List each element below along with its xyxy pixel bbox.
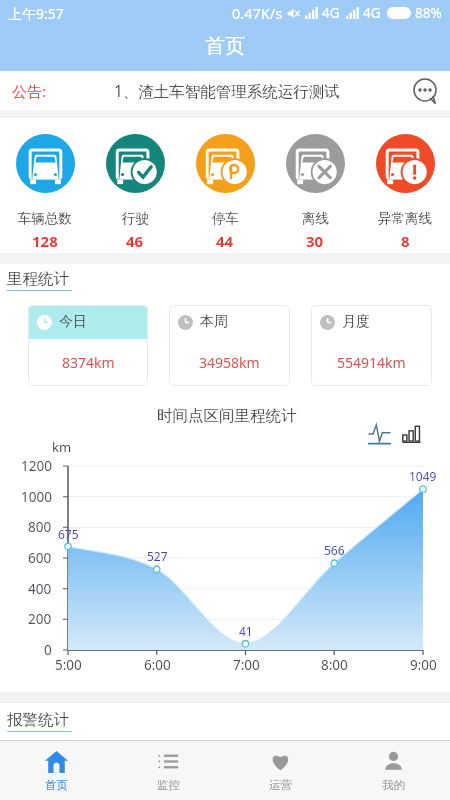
staticText: 6:00	[144, 656, 171, 674]
button[interactable]: 行驶	[90, 118, 180, 253]
button[interactable]: 车辆总数	[0, 118, 90, 253]
button[interactable]: 首页	[0, 741, 112, 800]
staticText: 88%	[415, 4, 442, 22]
staticText: 今日	[59, 313, 87, 331]
staticText: 离线	[302, 210, 329, 227]
staticText: 400	[28, 580, 52, 598]
staticText: 上午9:57	[8, 4, 64, 23]
staticText: 报警统计	[7, 710, 69, 730]
staticText: 公告:	[12, 81, 47, 101]
staticText: 1049	[409, 468, 437, 484]
staticText: 4G	[363, 4, 381, 22]
staticText: 44	[216, 231, 234, 251]
staticText: 监控	[157, 778, 180, 792]
staticText: 行驶	[122, 210, 149, 227]
staticText: 月度	[342, 313, 370, 331]
staticText: 本周	[200, 313, 228, 331]
staticText: 8	[401, 231, 410, 251]
staticText: 46	[126, 231, 144, 251]
staticText: 停车	[212, 210, 239, 227]
staticText: 5:00	[55, 656, 82, 674]
staticText: 首页	[45, 778, 68, 792]
button[interactable]: 月度	[311, 305, 432, 386]
staticText: 我的	[382, 778, 405, 792]
button[interactable]: 本周	[169, 305, 290, 386]
button[interactable]: 我的	[337, 741, 450, 800]
button[interactable]: Messages	[411, 77, 439, 105]
staticText: 8:00	[321, 656, 348, 674]
staticText: 0.47K/s	[232, 3, 283, 23]
staticText: 8374km	[62, 353, 115, 372]
staticText: 128	[32, 231, 58, 251]
staticText: 时间点区间里程统计	[157, 406, 297, 426]
staticText: 1000	[21, 488, 52, 506]
button[interactable]: 停车	[180, 118, 270, 253]
staticText: 9:00	[410, 656, 437, 674]
staticText: 0	[44, 641, 52, 659]
button[interactable]: Line chart	[368, 422, 391, 445]
button[interactable]: 运营	[224, 741, 337, 800]
staticText: 554914km	[337, 353, 406, 372]
staticText: 里程统计	[7, 269, 69, 289]
staticText: 1200	[21, 457, 52, 475]
staticText: 527	[147, 548, 168, 564]
staticText: 1、渣土车智能管理系统运行测试	[114, 80, 340, 101]
staticText: 7:00	[233, 656, 260, 674]
staticText: 41	[239, 623, 253, 639]
staticText: 4G	[322, 4, 340, 22]
button[interactable]: 监控	[112, 741, 224, 800]
staticText: 异常离线	[378, 210, 432, 227]
staticText: 800	[28, 518, 52, 536]
button[interactable]: Bar chart	[402, 424, 421, 443]
staticText: 600	[28, 549, 52, 567]
button[interactable]: 异常离线	[360, 118, 450, 253]
staticText: km	[52, 438, 72, 456]
button[interactable]: 今日	[28, 305, 148, 386]
staticText: 34958km	[199, 353, 260, 372]
staticText: 运营	[269, 778, 292, 792]
staticText: 675	[58, 526, 79, 542]
button[interactable]: 离线	[270, 118, 360, 253]
staticText: 200	[28, 610, 52, 628]
staticText: 首页	[205, 34, 245, 59]
staticText: 车辆总数	[18, 210, 72, 227]
staticText: 566	[324, 542, 345, 558]
staticText: 30	[306, 231, 324, 251]
